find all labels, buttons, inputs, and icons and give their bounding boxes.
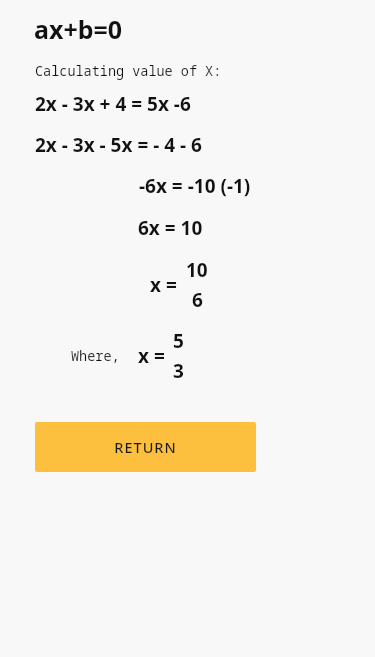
staticText: ax+b=0 [34, 12, 123, 46]
staticText: RETURN [114, 437, 177, 457]
staticText: 10 [186, 257, 208, 283]
staticText: 6x = 10 [138, 215, 203, 241]
button[interactable]: Return [35, 422, 256, 472]
staticText: Calculating value of X: [35, 62, 222, 80]
staticText: 5 [173, 328, 184, 354]
staticText: Where, [71, 347, 120, 365]
staticText: x = [138, 343, 165, 369]
staticText: 6 [192, 287, 203, 313]
staticText: 3 [173, 358, 184, 384]
staticText: 2x - 3x + 4 = 5x -6 [35, 91, 191, 117]
staticText: 2x - 3x - 5x = - 4 - 6 [35, 132, 202, 158]
staticText: x = [150, 272, 177, 298]
staticText: -6x = -10 (-1) [139, 173, 251, 199]
